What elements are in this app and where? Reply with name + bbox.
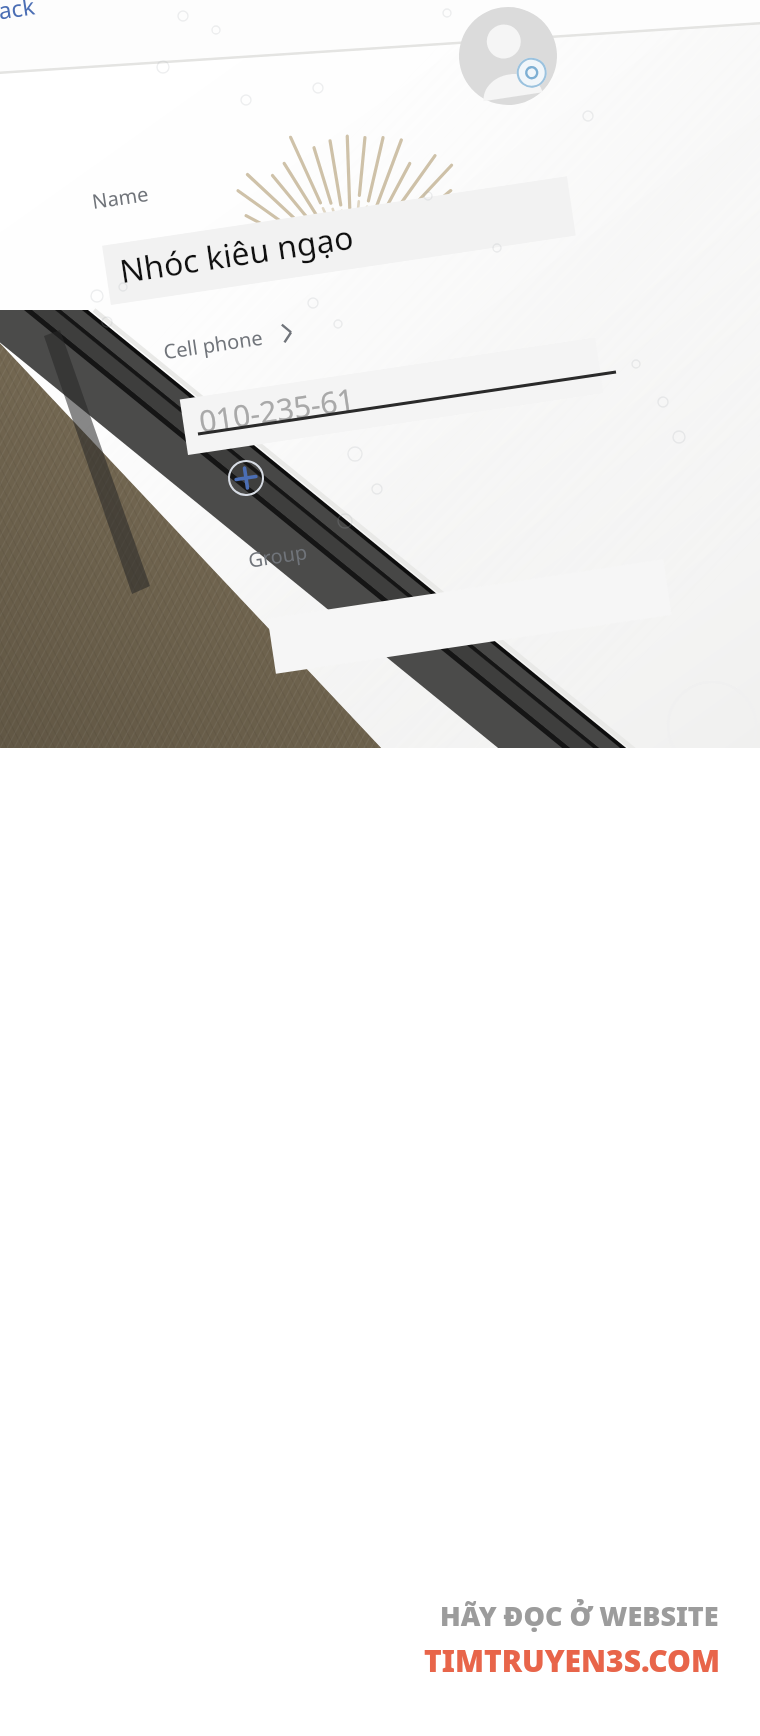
button[interactable] — [0, 0, 760, 1736]
